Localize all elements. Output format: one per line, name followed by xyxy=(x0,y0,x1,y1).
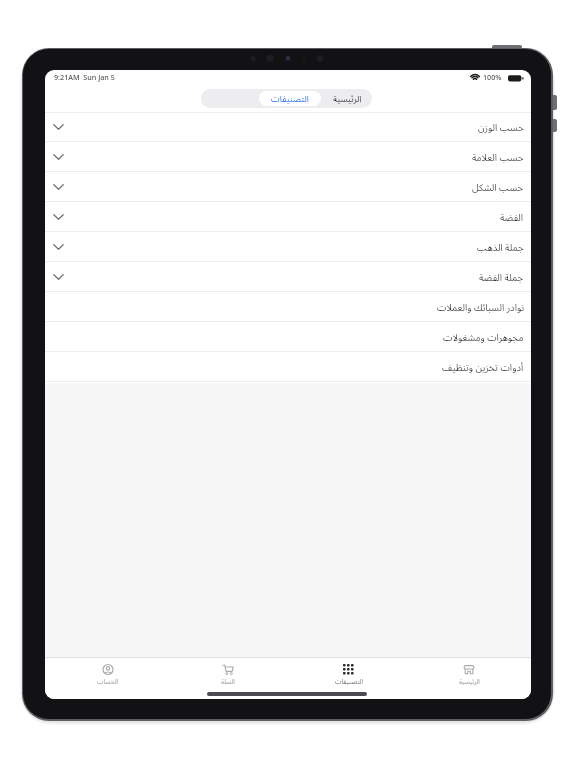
staticText: 9:21AM Sun Jan 5 xyxy=(54,72,115,82)
button[interactable]: التصنيفات xyxy=(259,91,321,106)
staticText: الرئيسية xyxy=(459,677,480,686)
staticText: الفضة xyxy=(500,211,524,224)
staticText: مجوهرات ومشغولات xyxy=(443,331,524,344)
staticText: 100% xyxy=(483,72,502,82)
staticText: نوادر السبائك والعملات xyxy=(437,301,524,314)
staticText: الرئيسية xyxy=(333,93,362,105)
button[interactable]: الحساب xyxy=(63,662,153,690)
staticText: جملة الذهب xyxy=(477,241,524,254)
button[interactable]: الرئيسية xyxy=(424,662,514,690)
staticText: حسب العلامة xyxy=(472,151,524,164)
button[interactable]: أدوات تخزين وتنظيف xyxy=(45,352,531,382)
staticText: جملة الفضة xyxy=(479,271,524,284)
button[interactable]: جملة الذهب xyxy=(45,232,531,262)
staticText: حسب الوزن xyxy=(478,121,524,134)
staticText: السلة xyxy=(221,677,235,686)
staticText: الحساب xyxy=(97,677,119,686)
staticText: التصنيفات xyxy=(335,677,364,686)
button[interactable]: حسب الوزن xyxy=(45,112,531,142)
staticText: حسب الشكل xyxy=(472,181,524,194)
button[interactable]: التصنيفات xyxy=(304,662,394,690)
staticText: التصنيفات xyxy=(271,93,309,105)
button[interactable]: الرئيسية xyxy=(321,91,373,106)
staticText: أدوات تخزين وتنظيف xyxy=(442,361,524,374)
button[interactable]: الفضة xyxy=(45,202,531,232)
button[interactable]: السلة xyxy=(183,662,273,690)
button[interactable]: نوادر السبائك والعملات xyxy=(45,292,531,322)
button[interactable]: جملة الفضة xyxy=(45,262,531,292)
button[interactable]: حسب الشكل xyxy=(45,172,531,202)
button[interactable]: حسب العلامة xyxy=(45,142,531,172)
button[interactable]: مجوهرات ومشغولات xyxy=(45,322,531,352)
